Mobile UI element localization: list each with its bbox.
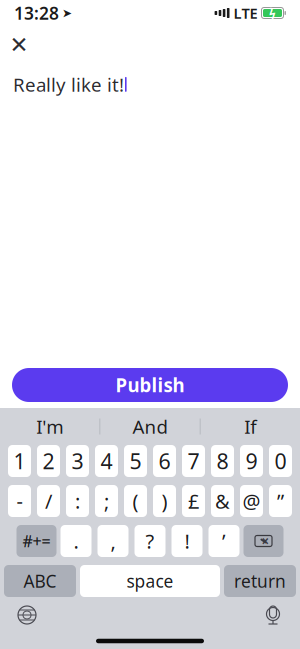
staticText: ✕: [9, 32, 28, 58]
button[interactable]: ): [153, 485, 176, 517]
button[interactable]: £: [182, 485, 205, 517]
button[interactable]: If: [201, 408, 300, 445]
button[interactable]: !: [171, 525, 202, 557]
staticText: ?: [145, 528, 154, 554]
staticText: If: [244, 414, 256, 439]
button[interactable]: /: [37, 485, 60, 517]
staticText: #+=: [22, 530, 50, 552]
button[interactable]: ,: [97, 525, 128, 557]
staticText: £: [188, 488, 199, 514]
staticText: 1: [13, 447, 25, 475]
button[interactable]: ’: [208, 525, 239, 557]
staticText: I'm: [36, 414, 63, 439]
staticText: /: [45, 488, 52, 514]
staticText: ”: [277, 488, 284, 514]
staticText: ): [161, 488, 167, 514]
staticText: ➤: [62, 6, 72, 20]
staticText: 13:28: [14, 1, 59, 24]
button[interactable]: ?: [134, 525, 165, 557]
button[interactable]: Delete: [243, 525, 283, 557]
staticText: ;: [104, 488, 109, 514]
button[interactable]: Publish: [12, 368, 288, 402]
button[interactable]: 1: [8, 445, 31, 477]
staticText: ’: [222, 528, 226, 554]
staticText: :: [75, 488, 80, 514]
button[interactable]: -: [8, 485, 31, 517]
button[interactable]: 9: [240, 445, 263, 477]
button[interactable]: (: [124, 485, 147, 517]
button[interactable]: 7: [182, 445, 205, 477]
staticText: 4: [100, 447, 112, 475]
button[interactable]: .: [60, 525, 91, 557]
button[interactable]: 4: [95, 445, 118, 477]
staticText: .: [73, 528, 78, 554]
staticText: LTE: [233, 3, 257, 23]
button[interactable]: 3: [66, 445, 89, 477]
staticText: ϟ: [269, 5, 276, 21]
staticText: !: [184, 528, 189, 554]
staticText: return: [234, 569, 286, 592]
button[interactable]: ;: [95, 485, 118, 517]
button[interactable]: Close: [2, 28, 36, 62]
staticText: 9: [245, 447, 257, 475]
staticText: 8: [216, 447, 228, 475]
button[interactable]: 8: [211, 445, 234, 477]
button[interactable]: I'm: [0, 408, 99, 445]
button[interactable]: 6: [153, 445, 176, 477]
staticText: space: [126, 569, 173, 592]
button[interactable]: ”: [269, 485, 292, 517]
button[interactable]: Dictation: [262, 603, 284, 627]
button[interactable]: ABC: [4, 565, 76, 597]
staticText: ,: [110, 528, 115, 554]
button[interactable]: &: [211, 485, 234, 517]
button[interactable]: :: [66, 485, 89, 517]
button[interactable]: space: [80, 565, 220, 597]
button[interactable]: 0: [269, 445, 292, 477]
button[interactable]: 5: [124, 445, 147, 477]
staticText: 0: [274, 447, 286, 475]
staticText: Publish: [115, 373, 184, 397]
staticText: Really like it!: [13, 72, 124, 97]
staticText: 2: [42, 447, 54, 475]
staticText: And: [132, 414, 167, 439]
button[interactable]: Next keyboard: [16, 604, 38, 626]
staticText: 6: [158, 447, 170, 475]
staticText: &: [215, 488, 230, 514]
button[interactable]: @: [240, 485, 263, 517]
staticText: 7: [187, 447, 199, 475]
staticText: 5: [129, 447, 141, 475]
staticText: @: [242, 488, 260, 514]
button[interactable]: 2: [37, 445, 60, 477]
button[interactable]: #+=: [16, 525, 56, 557]
staticText: -: [16, 488, 22, 514]
staticText: (: [132, 488, 138, 514]
button[interactable]: return: [224, 565, 296, 597]
staticText: ×: [261, 532, 269, 550]
staticText: 3: [71, 447, 83, 475]
staticText: ABC: [23, 569, 56, 592]
button[interactable]: And: [100, 408, 200, 445]
